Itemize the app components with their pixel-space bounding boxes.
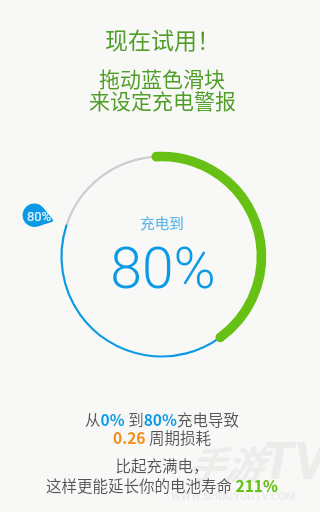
- staticText: 手游TV: [186, 431, 320, 492]
- staticText: WWW.SHOUYOUTV.COM: [171, 490, 296, 503]
- staticText: 拖动蓝色滑块: [99, 63, 225, 93]
- staticText: 这样更能延长你的电池寿命 211%: [46, 474, 278, 496]
- staticText: 80%: [110, 235, 216, 302]
- staticText: 比起充满电，: [115, 454, 209, 476]
- button[interactable]: Charge limit handle 80 percent: [19, 205, 59, 228]
- staticText: 充电到: [140, 212, 184, 233]
- staticText: 从0% 到80%充电导致: [85, 408, 239, 430]
- staticText: 0.26 周期损耗: [113, 426, 211, 448]
- staticText: 80%: [27, 209, 52, 224]
- staticText: 来设定充电警报: [89, 85, 236, 115]
- staticText: 现在试用！: [105, 22, 220, 55]
